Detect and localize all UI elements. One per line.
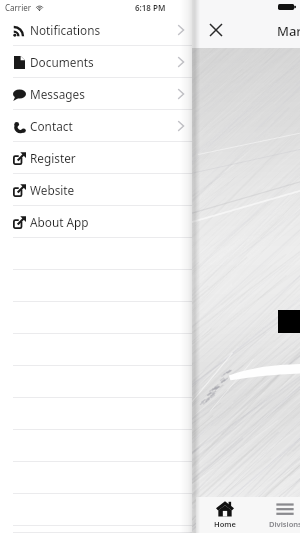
button[interactable]: Divisions — [259, 497, 300, 533]
button[interactable]: Notifications — [0, 14, 192, 46]
staticText: Documents — [30, 54, 94, 70]
staticText: Contact — [30, 118, 73, 134]
button[interactable]: About App — [0, 206, 192, 238]
button[interactable]: Register — [0, 142, 192, 174]
staticText: Divisions — [269, 519, 300, 529]
button[interactable]: Website — [0, 174, 192, 206]
staticText: Home — [214, 519, 236, 529]
staticText: Messages — [30, 86, 85, 102]
button[interactable]: Contact — [0, 110, 192, 142]
staticText: Carrier — [5, 2, 32, 13]
staticText: Website — [30, 182, 75, 198]
staticText: Marriott — [277, 22, 300, 40]
button[interactable]: Messages — [0, 78, 192, 110]
staticText: Notifications — [30, 22, 101, 38]
staticText: 6:18 PM — [135, 2, 166, 13]
staticText: About App — [30, 214, 89, 230]
button[interactable]: Home — [199, 497, 251, 533]
button[interactable]: Close — [204, 18, 228, 42]
button[interactable]: Documents — [0, 46, 192, 78]
staticText: Register — [30, 150, 76, 166]
